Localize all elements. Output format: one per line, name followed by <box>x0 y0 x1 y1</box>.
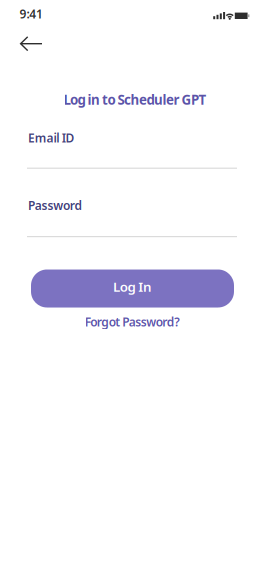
button[interactable]: Email ID <box>27 132 237 169</box>
staticText: Password <box>28 197 83 213</box>
staticText: Log in to Scheduler GPT <box>63 91 206 108</box>
staticText: Forgot Password? <box>85 314 180 330</box>
button[interactable]: Forgot Password? <box>85 314 180 330</box>
staticText: 9:41 <box>20 6 43 22</box>
button[interactable]: Password <box>27 199 237 238</box>
staticText: Email ID <box>28 130 75 146</box>
button[interactable]: Log In <box>31 269 234 307</box>
staticText: Log In <box>113 278 152 295</box>
button[interactable]: Back <box>20 36 44 52</box>
